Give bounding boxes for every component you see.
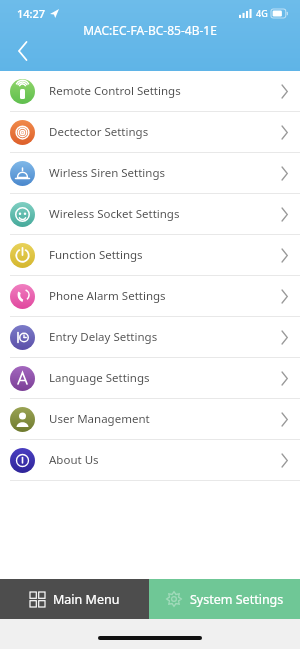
staticText: Dectector Settings (49, 124, 149, 140)
button[interactable]: Wirless Siren Settings (0, 153, 300, 193)
staticText: User Management (49, 411, 150, 427)
button[interactable]: Wireless Socket Settings (0, 194, 300, 234)
staticText: Language Settings (49, 370, 150, 386)
button[interactable]: Main Menu (0, 579, 149, 619)
button[interactable]: Function Settings (0, 235, 300, 275)
button[interactable]: Language Settings (0, 358, 300, 398)
staticText: Remote Control Settings (49, 83, 181, 99)
button[interactable]: Entry Delay Settings (0, 317, 300, 357)
staticText: Phone Alarm Settings (49, 288, 166, 304)
button[interactable]: Remote Control Settings (0, 71, 300, 111)
staticText: Main Menu (53, 591, 120, 608)
button[interactable]: Back (8, 36, 38, 66)
button[interactable]: User Management (0, 399, 300, 439)
staticText: Entry Delay Settings (49, 329, 158, 345)
staticText: Wireless Socket Settings (49, 206, 180, 222)
staticText: Function Settings (49, 247, 143, 263)
staticText: Wirless Siren Settings (49, 165, 166, 181)
staticText: About Us (49, 452, 99, 468)
button[interactable]: Phone Alarm Settings (0, 276, 300, 316)
button[interactable]: Dectector Settings (0, 112, 300, 152)
staticText: 4G (256, 7, 268, 19)
button[interactable]: System Settings (149, 579, 300, 619)
staticText: 14:27 (17, 6, 46, 21)
staticText: System Settings (190, 591, 284, 608)
staticText: MAC:EC-FA-BC-85-4B-1E (83, 22, 217, 38)
button[interactable]: About Us (0, 440, 300, 480)
